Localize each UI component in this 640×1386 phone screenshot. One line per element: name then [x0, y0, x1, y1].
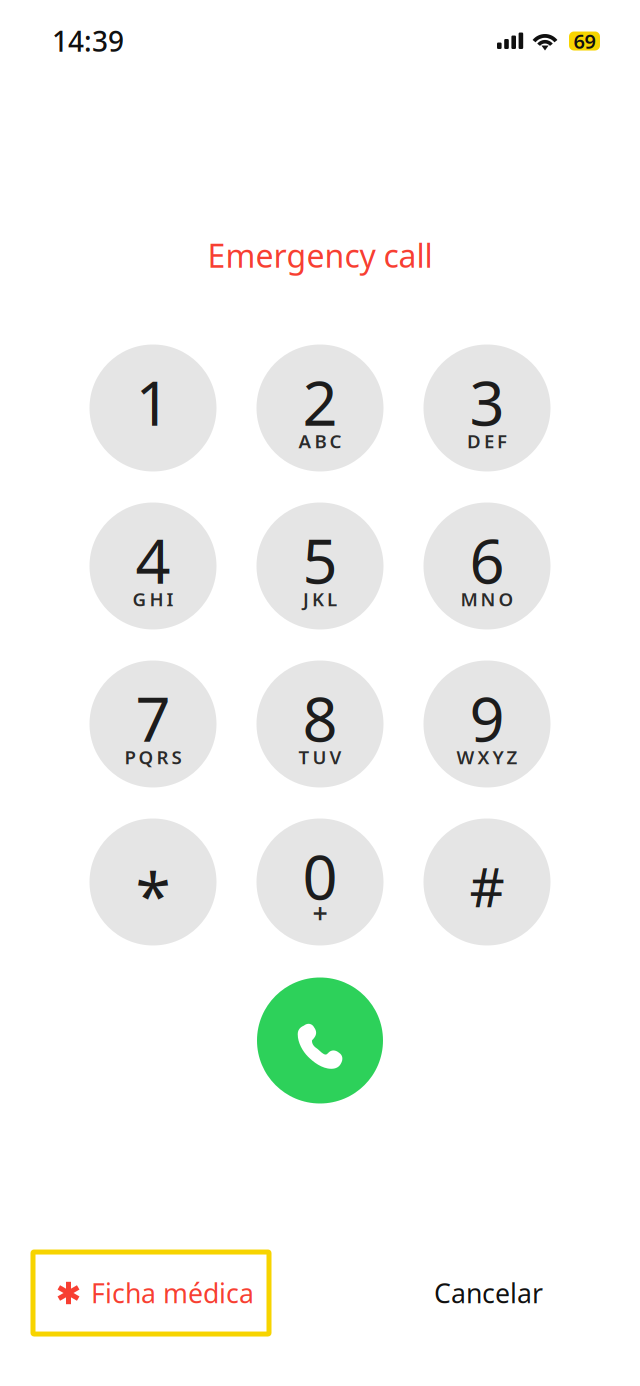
button[interactable]: 7: [89, 660, 216, 787]
staticText: D E F: [467, 429, 507, 453]
staticText: *: [135, 852, 170, 937]
staticText: 0: [302, 835, 337, 917]
staticText: 5: [302, 519, 337, 601]
button[interactable]: Call: [257, 977, 383, 1103]
staticText: 3: [469, 361, 504, 443]
staticText: A B C: [298, 429, 341, 453]
staticText: 8: [302, 677, 337, 759]
staticText: +: [312, 895, 327, 931]
staticText: 7: [135, 677, 170, 759]
staticText: T U V: [298, 745, 341, 769]
staticText: 6: [469, 519, 504, 601]
staticText: 1: [135, 361, 170, 443]
button[interactable]: 9: [423, 660, 550, 787]
button[interactable]: 1: [89, 344, 216, 471]
button[interactable]: *: [89, 818, 216, 945]
staticText: #: [469, 850, 504, 922]
staticText: J K L: [303, 587, 337, 611]
button[interactable]: Cancelar: [434, 1275, 543, 1311]
button[interactable]: 5: [256, 502, 383, 629]
staticText: 69: [573, 28, 595, 54]
button[interactable]: 8: [256, 660, 383, 787]
staticText: G H I: [132, 587, 173, 611]
staticText: 14:39: [52, 22, 124, 60]
staticText: W X Y Z: [456, 745, 517, 769]
staticText: M N O: [460, 587, 513, 611]
button[interactable]: 6: [423, 502, 550, 629]
staticText: 9: [469, 677, 504, 759]
button[interactable]: 2: [256, 344, 383, 471]
button[interactable]: 3: [423, 344, 550, 471]
staticText: 2: [302, 361, 337, 443]
button[interactable]: 0: [256, 818, 383, 945]
button[interactable]: Ficha médica: [33, 1252, 269, 1334]
button[interactable]: #: [423, 818, 550, 945]
staticText: P Q R S: [124, 745, 181, 769]
staticText: Emergency call: [207, 234, 432, 276]
staticText: Ficha médica: [91, 1275, 254, 1311]
staticText: Cancelar: [434, 1275, 543, 1311]
staticText: 4: [135, 519, 170, 601]
button[interactable]: 4: [89, 502, 216, 629]
